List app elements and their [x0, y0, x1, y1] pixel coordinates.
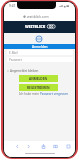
staticText: Anmelden — [32, 45, 48, 49]
button[interactable]: Ich habe mein — [19, 92, 69, 96]
staticText: REGISTRIEREN — [27, 86, 50, 90]
staticText: Angemeldet bleiben — [10, 69, 39, 73]
staticText: Passwort vergessen — [40, 92, 69, 96]
button[interactable]: weitblick.com — [4, 14, 71, 19]
button[interactable]: Angemeldet bleiben — [7, 69, 39, 73]
button[interactable]: Back — [13, 142, 21, 150]
staticText: weitblick.com — [27, 14, 49, 19]
staticText: Passwort — [9, 58, 22, 62]
button[interactable]: Passwort — [7, 57, 73, 62]
button[interactable]: Anmelden — [4, 44, 75, 49]
button[interactable]: Forward — [24, 142, 32, 150]
button[interactable]: Tabs — [64, 142, 72, 150]
button[interactable]: REGISTRIEREN — [19, 84, 58, 91]
staticText: WEITBLICK — [25, 24, 46, 29]
button[interactable]: ANMELDEN — [19, 75, 58, 82]
staticText: 9:41 — [9, 4, 16, 8]
staticText: E-Mail — [9, 51, 18, 55]
button[interactable]: Share — [39, 142, 47, 150]
staticText: ANMELDEN — [29, 77, 48, 81]
button[interactable]: E-Mail — [7, 50, 73, 55]
staticText: Ich habe mein — [19, 92, 40, 96]
button[interactable]: Bookmarks — [51, 142, 59, 150]
